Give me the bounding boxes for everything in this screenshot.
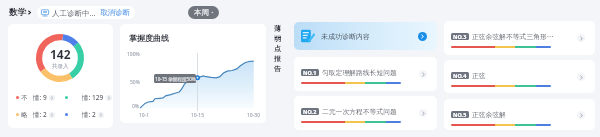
button[interactable]: NO.5 [444, 99, 595, 130]
staticText: 掌握度曲线 [129, 33, 169, 43]
staticText: 懂: 129 [82, 93, 104, 102]
staticText: NO.5 [453, 111, 467, 118]
other: View NO.1 [419, 70, 427, 78]
staticText: 10-30 [247, 112, 261, 119]
staticText: 懂: 2 [82, 110, 96, 119]
staticText: NO.1 [303, 69, 317, 76]
button[interactable]: 人工诊断中... [37, 6, 135, 19]
staticText: NO.4 [453, 72, 467, 79]
staticText: 取消诊断 [100, 8, 130, 17]
other: View NO.3 [577, 34, 585, 42]
staticText: 正弦余弦解不等式三角形角度... [472, 32, 560, 41]
other: View NO.5 [577, 111, 585, 119]
button[interactable]: 基本 [65, 93, 112, 102]
staticText: 人工诊断中... [52, 8, 96, 18]
staticText: 正弦 [472, 71, 560, 80]
staticText: 懂: 9 [33, 93, 47, 102]
staticText: 告 [274, 64, 281, 73]
staticText: 50% [130, 79, 140, 86]
staticText: 本周 [194, 8, 209, 17]
button[interactable]: 不 [16, 93, 55, 102]
staticText: 薄 [274, 24, 281, 33]
staticText: 二元一次方程不等式问题 [322, 107, 410, 116]
staticText: 匀取定理解路线长短问题 [322, 68, 410, 77]
staticText: 懂: 2 [33, 110, 47, 119]
staticText: 100% [127, 51, 140, 58]
staticText: 略 [21, 111, 28, 119]
staticText: 数学 [9, 7, 26, 18]
staticText: 10-15 掌握程度50% [155, 76, 196, 82]
staticText: NO.2 [303, 108, 317, 115]
staticText: NO.3 [453, 33, 467, 40]
staticText: 0% [132, 103, 140, 110]
staticText: 正弦余弦解 [472, 110, 560, 119]
button[interactable]: 本周 [188, 6, 219, 19]
staticText: 共录入 [52, 63, 69, 70]
staticText: 点 [274, 44, 281, 53]
staticText: 报 [274, 54, 281, 63]
button[interactable]: 数学 [9, 5, 32, 19]
button[interactable]: NO.3 [444, 21, 595, 55]
button[interactable]: 未成功诊断内容 [294, 22, 437, 50]
button[interactable]: NO.1 [294, 57, 437, 91]
staticText: 142 [50, 46, 71, 62]
button[interactable]: 完全 [65, 110, 104, 119]
staticText: 弱 [274, 34, 281, 43]
button[interactable]: NO.4 [444, 60, 595, 93]
staticText: 未成功诊断内容 [321, 32, 370, 41]
button[interactable]: 略 [16, 110, 55, 119]
staticText: 10-1 [139, 112, 150, 119]
button[interactable]: NO.2 [294, 96, 437, 130]
other: View NO.4 [577, 73, 585, 81]
other: View NO.2 [419, 109, 427, 117]
staticText: 不 [21, 94, 28, 102]
staticText: 10-15 [191, 112, 205, 119]
